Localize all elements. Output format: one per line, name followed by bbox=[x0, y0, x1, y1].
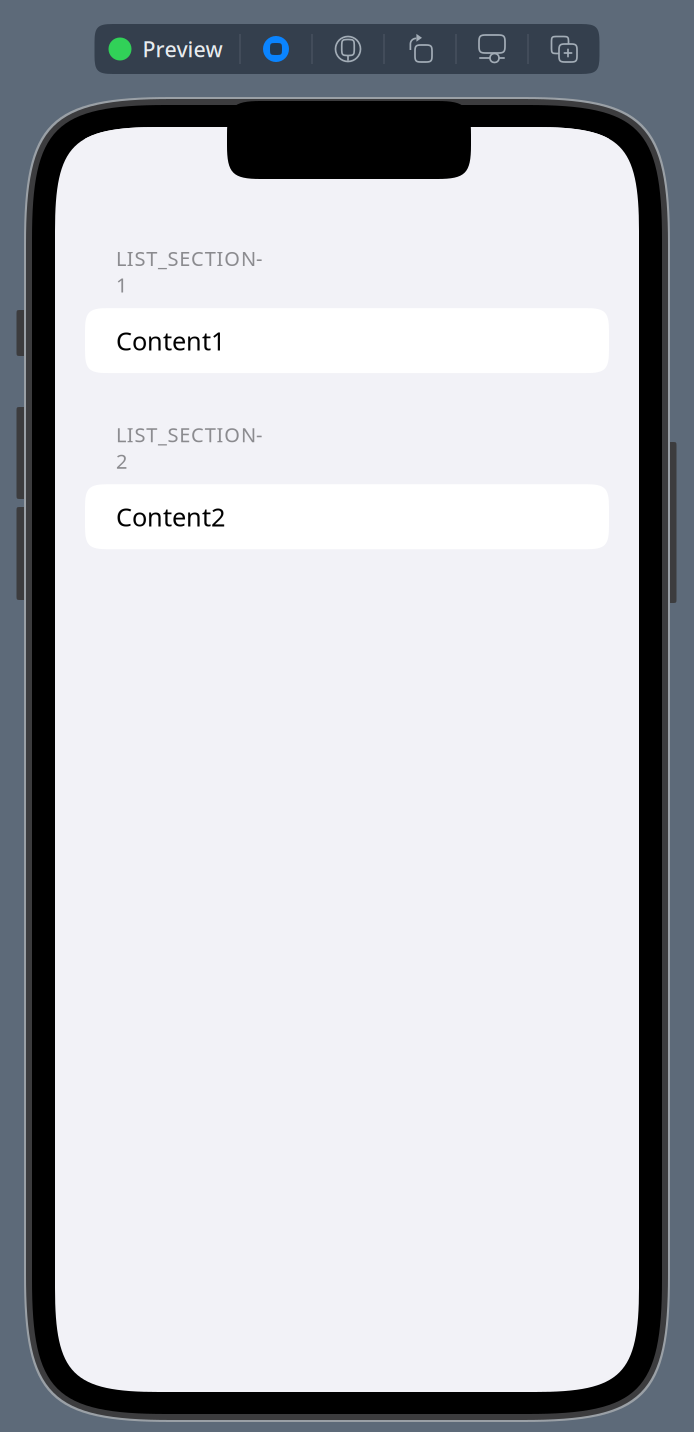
staticText: Content2 bbox=[116, 500, 225, 533]
button[interactable]: Preview bbox=[94, 24, 239, 74]
staticText: Content1 bbox=[116, 324, 225, 357]
staticText: Preview bbox=[142, 35, 222, 63]
button[interactable]: Rotate device bbox=[384, 24, 455, 74]
button[interactable]: Content1 bbox=[85, 308, 609, 373]
button[interactable]: Live preview bbox=[240, 24, 311, 74]
button[interactable]: Device settings bbox=[456, 24, 527, 74]
staticText: LIST_SECTION1 bbox=[116, 245, 262, 298]
button[interactable]: Preview variants bbox=[312, 24, 383, 74]
staticText: LIST_SECTION2 bbox=[116, 421, 262, 474]
button[interactable]: Content2 bbox=[85, 484, 609, 549]
button[interactable]: Add preview bbox=[528, 24, 599, 74]
